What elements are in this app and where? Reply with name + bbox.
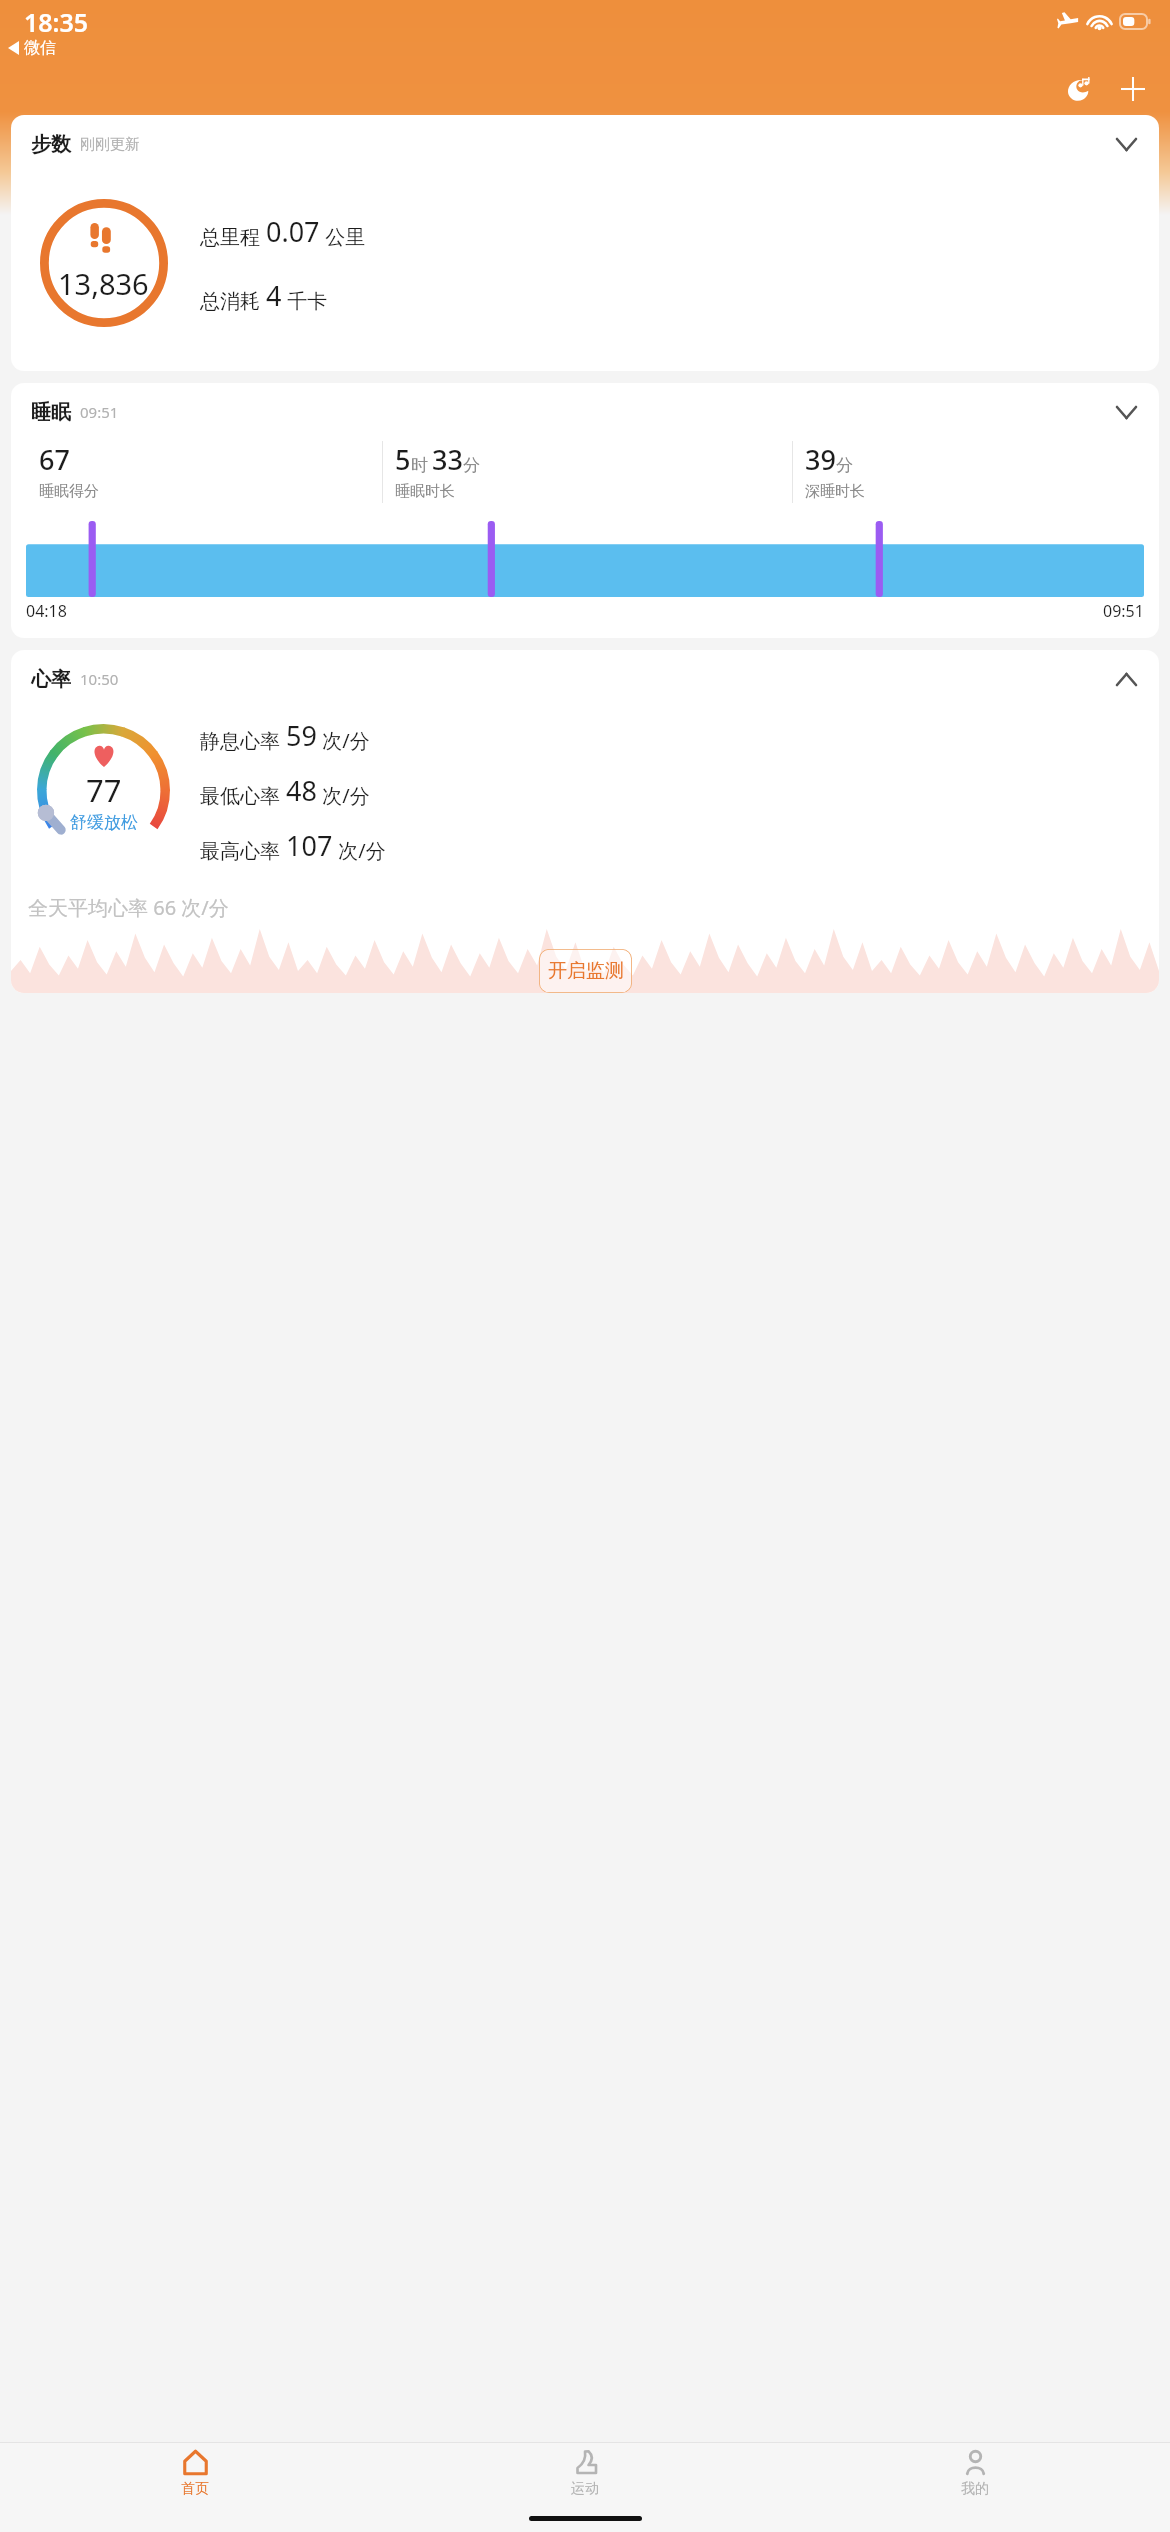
staticText: 107 [286, 827, 333, 864]
staticText: 静息心率 [200, 727, 286, 754]
staticText: 分 [836, 455, 853, 476]
staticText: 次/分 [317, 727, 370, 754]
button[interactable]: 微信 [6, 38, 58, 58]
button[interactable]: 我的 [780, 2443, 1170, 2505]
staticText: 最高心率 [200, 837, 286, 864]
staticText: 77 [86, 769, 122, 811]
staticText: 09:51 [1103, 600, 1144, 622]
staticText: 舒缓放松 [70, 812, 138, 833]
staticText: 睡眠 [31, 400, 71, 425]
button[interactable]: Add [1110, 66, 1156, 112]
staticText: 睡眠得分 [39, 482, 99, 501]
staticText: 次/分 [317, 782, 370, 809]
button[interactable]: 运动 [390, 2443, 780, 2505]
staticText: 微信 [24, 38, 56, 58]
staticText: 04:18 [26, 600, 67, 622]
staticText: 4 [266, 277, 282, 314]
other: Expand [1109, 127, 1143, 161]
staticText: 时 [411, 455, 428, 476]
staticText: 首页 [181, 2480, 209, 2498]
staticText: 0.07 [266, 213, 320, 250]
staticText: 全天平均心率 66 次/分 [28, 894, 229, 921]
staticText: 总里程 [200, 223, 266, 250]
staticText: 5 [395, 441, 411, 478]
other: Expand [1109, 395, 1143, 429]
staticText: 67 [39, 441, 70, 478]
staticText: 分 [463, 455, 480, 476]
button[interactable]: 心率 [11, 650, 1159, 993]
staticText: 刚刚更新 [80, 135, 140, 154]
button[interactable]: 首页 [0, 2443, 390, 2505]
staticText: 33 [432, 441, 463, 478]
staticText: 59 [286, 717, 317, 754]
staticText: 09:51 [80, 402, 119, 422]
staticText: 开启监测 [548, 959, 624, 983]
staticText: 总消耗 [200, 287, 266, 314]
staticText: 千卡 [282, 287, 328, 314]
button[interactable]: Sleep music [1054, 66, 1100, 112]
staticText: 运动 [571, 2480, 599, 2498]
staticText: 次/分 [333, 837, 386, 864]
staticText: 39 [805, 441, 836, 478]
staticText: 步数 [31, 132, 71, 157]
staticText: 13,836 [58, 264, 149, 303]
button[interactable]: 步数 [11, 115, 1159, 371]
staticText: 深睡时长 [805, 482, 865, 501]
button[interactable]: 睡眠 [11, 383, 1159, 433]
staticText: 公里 [320, 223, 366, 250]
staticText: 睡眠时长 [395, 482, 455, 501]
button[interactable]: 心率 [11, 650, 1159, 700]
staticText: 10:50 [80, 669, 119, 689]
staticText: 48 [286, 772, 317, 809]
staticText: 心率 [31, 667, 71, 692]
staticText: 我的 [961, 2480, 989, 2498]
other: Collapse [1109, 662, 1143, 696]
button[interactable]: 睡眠 [11, 383, 1159, 638]
staticText: 最低心率 [200, 782, 286, 809]
button[interactable]: 开启监测 [539, 949, 632, 993]
button[interactable]: 步数 [11, 115, 1159, 165]
staticText: 18:35 [24, 5, 89, 39]
